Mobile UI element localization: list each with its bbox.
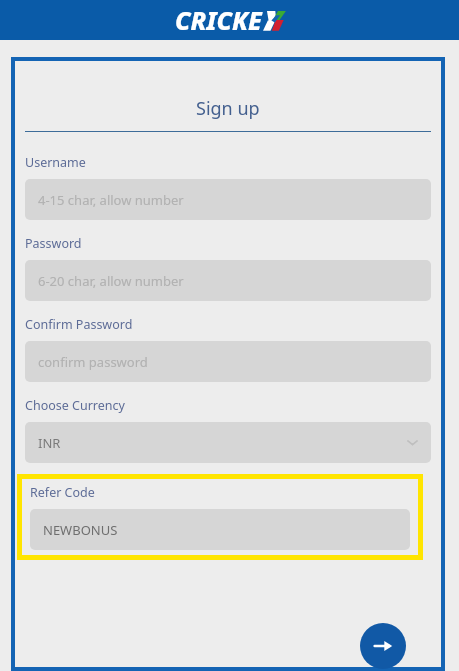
button[interactable]: confirm password	[25, 341, 431, 382]
staticText: CRICKE	[175, 3, 262, 37]
staticText: Confirm Password	[25, 316, 133, 333]
staticText: Refer Code	[30, 484, 95, 501]
staticText: NEWBONUS	[43, 521, 118, 539]
button[interactable]: Next	[360, 623, 406, 669]
staticText: 4-15 char, allow number	[38, 191, 184, 209]
button[interactable]: NEWBONUS	[30, 509, 410, 550]
button[interactable]: INR	[25, 422, 431, 463]
staticText: confirm password	[38, 353, 148, 371]
staticText: Password	[25, 235, 82, 252]
staticText: Sign up	[196, 96, 260, 121]
button[interactable]: 4-15 char, allow number	[25, 179, 431, 220]
staticText: INR	[38, 434, 61, 452]
button[interactable]: 6-20 char, allow number	[25, 260, 431, 301]
staticText: 6-20 char, allow number	[38, 272, 184, 290]
staticText: Choose Currency	[25, 397, 125, 414]
staticText: Username	[25, 154, 86, 171]
